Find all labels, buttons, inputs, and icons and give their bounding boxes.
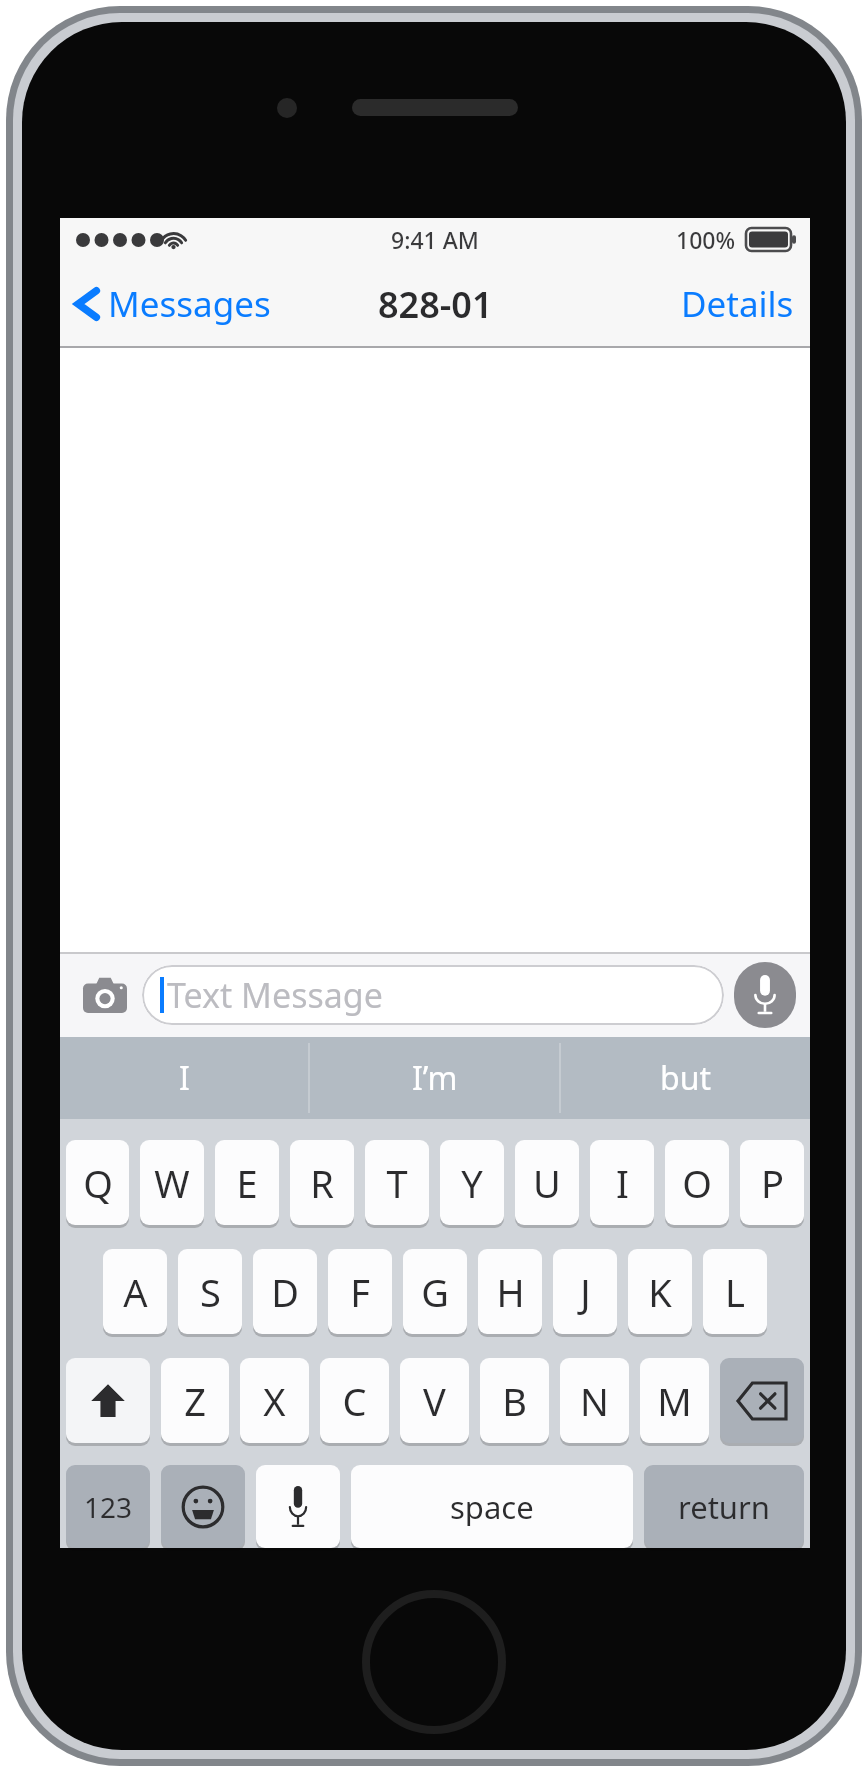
staticText: M	[657, 1375, 692, 1427]
button[interactable]: C	[320, 1358, 389, 1443]
button[interactable]: T	[365, 1140, 429, 1225]
button[interactable]: 123	[66, 1465, 150, 1548]
staticText: H	[496, 1266, 525, 1318]
button[interactable]: H	[478, 1249, 542, 1334]
button[interactable]: R	[290, 1140, 354, 1225]
button[interactable]: return	[644, 1465, 804, 1548]
staticText: I	[179, 1056, 190, 1100]
button[interactable]: but	[561, 1037, 810, 1119]
staticText: 100%	[676, 224, 736, 255]
staticText: D	[271, 1266, 299, 1318]
button[interactable]: O	[665, 1140, 729, 1225]
staticText: Text Message	[167, 972, 383, 1018]
staticText: E	[236, 1157, 258, 1209]
button[interactable]: Text Message	[142, 965, 724, 1025]
staticText: U	[533, 1157, 561, 1209]
staticText: Z	[184, 1375, 206, 1427]
staticText: Y	[461, 1157, 483, 1209]
button[interactable]: B	[480, 1358, 549, 1443]
button[interactable]: Emoji	[161, 1465, 245, 1548]
staticText: L	[725, 1266, 745, 1318]
staticText: K	[648, 1266, 672, 1318]
staticText: 828-01	[378, 280, 493, 329]
staticText: I’m	[412, 1056, 458, 1100]
button[interactable]: P	[740, 1140, 804, 1225]
button[interactable]: L	[703, 1249, 767, 1334]
button[interactable]: Messages	[60, 270, 283, 338]
button[interactable]: Dictation	[734, 962, 796, 1028]
staticText: O	[682, 1157, 712, 1209]
staticText: J	[580, 1266, 591, 1318]
button[interactable]: I	[60, 1037, 308, 1119]
staticText: I	[616, 1157, 629, 1209]
button[interactable]: V	[400, 1358, 469, 1443]
button[interactable]: M	[640, 1358, 709, 1443]
staticText: P	[761, 1157, 784, 1209]
button[interactable]: Camera	[74, 964, 136, 1026]
staticText: space	[450, 1486, 534, 1528]
button[interactable]: I	[590, 1140, 654, 1225]
button[interactable]: J	[553, 1249, 617, 1334]
button[interactable]: Details	[665, 268, 810, 340]
button[interactable]: G	[403, 1249, 467, 1334]
button[interactable]: Delete	[720, 1358, 804, 1443]
staticText: Messages	[108, 280, 271, 328]
staticText: W	[154, 1157, 190, 1209]
staticText: F	[350, 1266, 370, 1318]
staticText: Q	[83, 1157, 113, 1209]
staticText: S	[200, 1266, 221, 1318]
button[interactable]: W	[140, 1140, 204, 1225]
staticText: C	[342, 1375, 367, 1427]
staticText: 9:41 AM	[391, 224, 479, 255]
button[interactable]: Y	[440, 1140, 504, 1225]
staticText: return	[678, 1486, 770, 1528]
staticText: X	[263, 1375, 286, 1427]
button[interactable]: K	[628, 1249, 692, 1334]
button[interactable]: I’m	[310, 1037, 559, 1119]
button[interactable]: A	[103, 1249, 167, 1334]
button[interactable]: N	[560, 1358, 629, 1443]
button[interactable]: S	[178, 1249, 242, 1334]
staticText: but	[660, 1056, 712, 1100]
staticText: Details	[681, 280, 794, 328]
staticText: V	[423, 1375, 446, 1427]
button[interactable]: X	[240, 1358, 309, 1443]
button[interactable]: U	[515, 1140, 579, 1225]
staticText: T	[386, 1157, 408, 1209]
staticText: N	[580, 1375, 609, 1427]
button[interactable]: D	[253, 1249, 317, 1334]
button[interactable]: E	[215, 1140, 279, 1225]
button[interactable]: Shift	[66, 1358, 150, 1443]
button[interactable]: Z	[161, 1358, 229, 1443]
button[interactable]: space	[351, 1465, 633, 1548]
staticText: A	[123, 1266, 148, 1318]
staticText: R	[310, 1157, 334, 1209]
staticText: 123	[84, 1488, 133, 1526]
staticText: G	[421, 1266, 449, 1318]
staticText: B	[502, 1375, 527, 1427]
button[interactable]: F	[328, 1249, 392, 1334]
button[interactable]: Q	[66, 1140, 129, 1225]
button[interactable]: Dictate	[256, 1465, 340, 1548]
